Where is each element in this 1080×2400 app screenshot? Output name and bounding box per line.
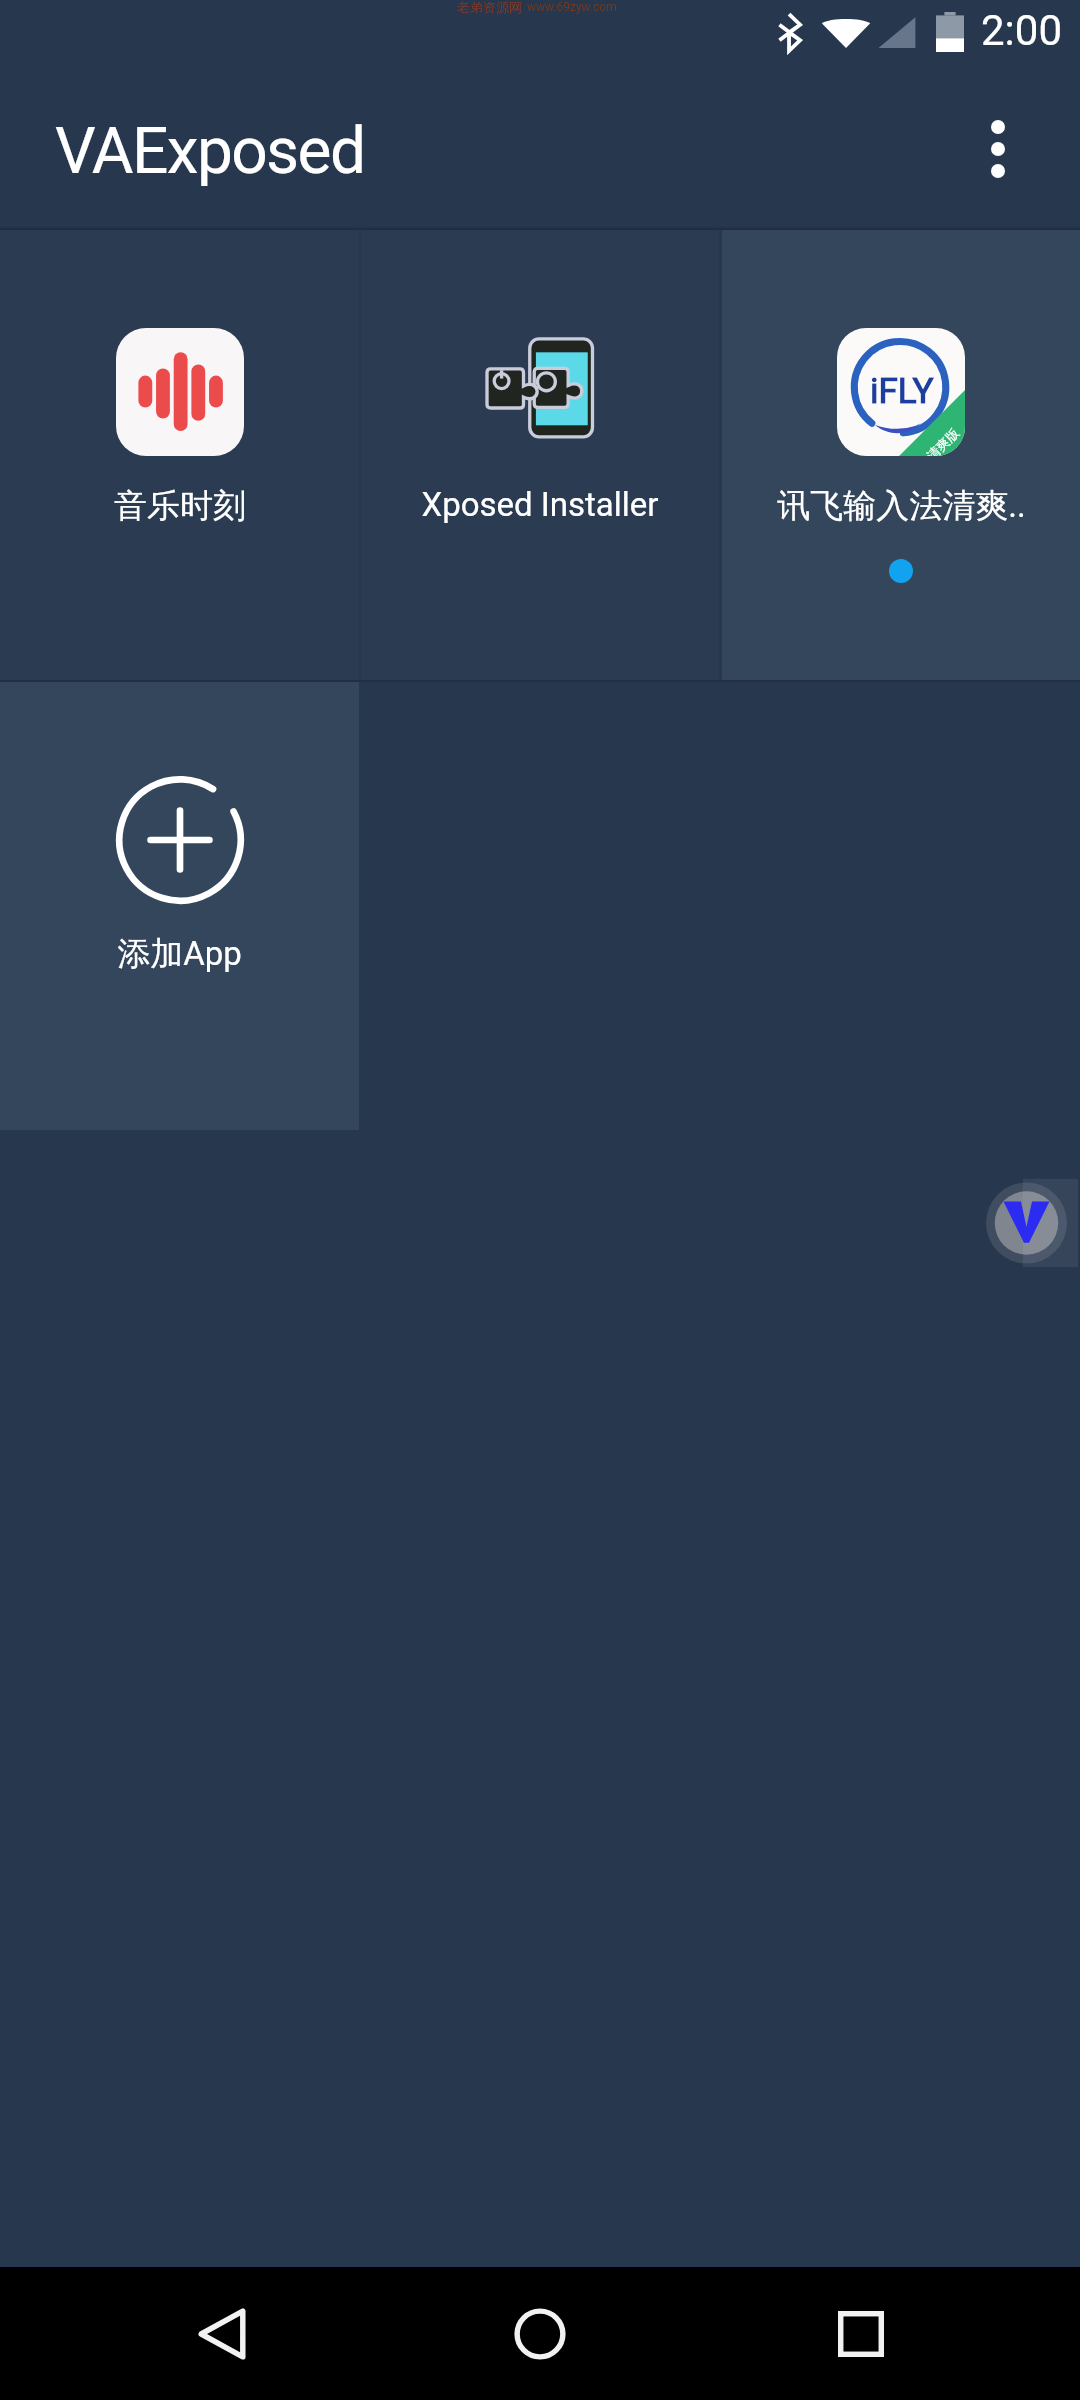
button[interactable]: More options xyxy=(949,100,1047,198)
staticText: 2:00 xyxy=(981,6,1062,55)
staticText: 音乐时刻 xyxy=(114,485,246,527)
staticText: 清爽版 xyxy=(923,425,962,456)
button[interactable]: 音乐时刻 xyxy=(0,230,359,680)
staticText: 添加App xyxy=(117,933,242,975)
button[interactable]: Recents xyxy=(801,2267,921,2400)
button[interactable]: Back xyxy=(162,2267,282,2400)
staticText: 讯飞输入法清爽.. xyxy=(777,485,1026,527)
button[interactable]: Home xyxy=(480,2267,600,2400)
button[interactable]: iFLY xyxy=(722,230,1080,680)
staticText: www.69zyw.com xyxy=(527,0,617,14)
button[interactable]: Assistant xyxy=(986,1177,1078,1269)
staticText: iFLY xyxy=(870,371,934,412)
staticText: VAExposed xyxy=(55,114,365,189)
staticText: Xposed Installer xyxy=(421,485,659,524)
button[interactable]: 添加App xyxy=(0,682,359,1130)
staticText: 老弟资源网 xyxy=(457,0,522,15)
button[interactable]: Xposed Installer xyxy=(361,230,719,680)
